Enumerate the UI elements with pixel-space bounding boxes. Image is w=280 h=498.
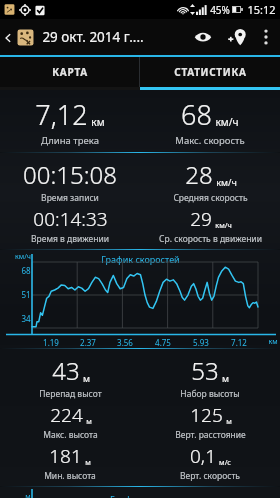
staticText: Верт. скорость xyxy=(180,470,240,482)
staticText: 4.75 xyxy=(155,337,171,348)
button[interactable]: 68 xyxy=(140,96,280,147)
staticText: 2.37 xyxy=(80,337,96,348)
button[interactable]: Back xyxy=(0,28,37,47)
staticText: График высот xyxy=(110,493,170,498)
staticText: Перепад высот xyxy=(39,388,102,400)
staticText: 7,12 xyxy=(35,96,88,133)
button[interactable]: More options xyxy=(254,19,278,55)
button[interactable]: КАРТА xyxy=(0,57,139,87)
staticText: км/ч xyxy=(15,252,31,262)
staticText: Время записи xyxy=(41,192,99,204)
staticText: м xyxy=(83,372,90,384)
staticText: 45% xyxy=(210,3,230,17)
staticText: СТАТИСТИКА xyxy=(174,65,247,79)
staticText: 68 xyxy=(181,96,212,133)
button[interactable]: 43 xyxy=(0,354,140,482)
staticText: 51 xyxy=(21,289,31,300)
staticText: 29 окт. 2014 г.... xyxy=(42,28,144,46)
staticText: 00:14:33 xyxy=(33,206,108,232)
staticText: 15:12 xyxy=(247,2,276,17)
staticText: 5.93 xyxy=(193,337,209,348)
staticText: КАРТА xyxy=(52,65,88,79)
staticText: Средняя скорость xyxy=(173,192,248,204)
staticText: 224 xyxy=(50,402,83,428)
staticText: км/ч xyxy=(216,176,237,188)
staticText: м xyxy=(85,457,91,467)
staticText: км/ч xyxy=(215,220,232,230)
staticText: 29 xyxy=(190,206,212,232)
staticText: м xyxy=(86,416,92,426)
staticText: км xyxy=(268,337,278,347)
button[interactable]: 7,12 xyxy=(0,96,140,147)
staticText: Макс. скорость xyxy=(175,134,245,147)
staticText: 34 xyxy=(21,313,31,324)
staticText: 28 xyxy=(185,158,213,191)
staticText: км/ч xyxy=(215,115,239,129)
staticText: 7.12 xyxy=(231,337,247,348)
staticText: 1.19 xyxy=(43,337,59,348)
button[interactable]: 00:15:08 xyxy=(0,158,140,245)
staticText: Набор высоты xyxy=(180,388,240,400)
staticText: км xyxy=(91,115,105,129)
staticText: Ср. скорость в движении xyxy=(159,233,262,245)
button[interactable]: СТАТИСТИКА xyxy=(140,57,280,87)
staticText: 43 xyxy=(52,354,80,387)
staticText: 125 xyxy=(190,402,223,428)
staticText: м xyxy=(25,492,31,498)
staticText: Макс. высота xyxy=(43,429,98,441)
staticText: 68 xyxy=(21,265,31,276)
button[interactable]: 28 xyxy=(140,158,280,245)
button[interactable]: График высот xyxy=(0,487,280,498)
staticText: График скоростей xyxy=(101,253,180,265)
staticText: 181 xyxy=(49,443,82,469)
staticText: 0,1 xyxy=(190,443,216,469)
staticText: Мин. высота xyxy=(44,470,96,482)
button[interactable]: Add place xyxy=(220,19,254,55)
staticText: 3.56 xyxy=(117,337,133,348)
staticText: м/с xyxy=(219,457,231,467)
staticText: 53 xyxy=(191,354,219,387)
staticText: м xyxy=(226,416,232,426)
button[interactable]: 53 xyxy=(140,354,280,482)
button[interactable]: График скоростей xyxy=(0,250,280,348)
staticText: м xyxy=(222,372,229,384)
staticText: Длина трека xyxy=(41,134,99,147)
staticText: Время в движении xyxy=(31,233,109,245)
staticText: 00:15:08 xyxy=(23,158,117,191)
button[interactable]: Visibility xyxy=(186,19,220,55)
staticText: Верт. расстояние xyxy=(175,429,246,441)
